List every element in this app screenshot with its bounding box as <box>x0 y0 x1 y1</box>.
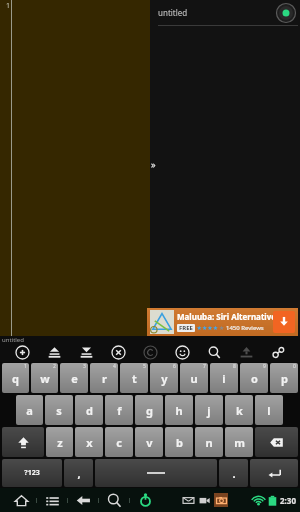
staticText: u <box>190 371 198 386</box>
staticText: k <box>236 403 243 418</box>
staticText: 1 <box>6 1 11 11</box>
staticText: m <box>234 435 245 450</box>
button[interactable]: Record <box>276 3 296 23</box>
button[interactable]: Export <box>76 343 96 362</box>
button[interactable]: Backspace <box>255 427 298 457</box>
staticText: r <box>102 371 107 386</box>
staticText: 7 <box>203 363 206 370</box>
button[interactable]: s <box>45 395 73 425</box>
staticText: 3 <box>83 363 86 370</box>
staticText: untitled <box>158 7 276 18</box>
button[interactable]: Record <box>132 488 158 512</box>
staticText: 1450 Reviews <box>226 324 264 332</box>
staticText: . <box>232 466 236 481</box>
button[interactable]: , <box>64 459 93 487</box>
staticText: Maluuba: Siri Alternative <box>177 311 277 322</box>
button[interactable]: e <box>60 363 88 393</box>
button[interactable]: o <box>240 363 268 393</box>
staticText: b <box>176 435 183 450</box>
button[interactable]: Enter <box>250 459 298 487</box>
staticText: 6 <box>173 363 176 370</box>
staticText: h <box>175 403 183 418</box>
other: Video <box>198 494 211 507</box>
button[interactable]: y <box>150 363 178 393</box>
staticText: e <box>71 371 78 386</box>
button[interactable]: f <box>105 395 133 425</box>
staticText: i <box>222 371 226 386</box>
staticText: ★ <box>219 324 226 332</box>
button[interactable]: Undo <box>140 343 160 362</box>
button[interactable]: w <box>31 363 58 393</box>
button[interactable]: Close <box>108 343 128 362</box>
staticText: v <box>146 435 153 450</box>
staticText: 4 <box>113 363 116 370</box>
button[interactable]: c <box>105 427 133 457</box>
staticText: ?123 <box>24 468 40 478</box>
staticText: , <box>77 466 81 481</box>
staticText: a <box>26 403 33 418</box>
button[interactable]: b <box>165 427 193 457</box>
button[interactable]: v <box>135 427 163 457</box>
staticText: g <box>146 403 153 418</box>
button[interactable]: m <box>225 427 253 457</box>
button[interactable]: Recents <box>39 488 65 512</box>
button[interactable]: Link <box>268 343 288 362</box>
button[interactable]: i <box>210 363 238 393</box>
staticText: 0 <box>293 363 296 370</box>
button[interactable] <box>95 459 217 487</box>
button[interactable]: ?123 <box>2 459 62 487</box>
button[interactable]: 1 <box>0 0 150 336</box>
staticText: FREE <box>179 324 193 332</box>
button[interactable]: p <box>270 363 298 393</box>
staticText: d <box>86 403 93 418</box>
button[interactable]: k <box>225 395 253 425</box>
staticText: q <box>12 371 19 386</box>
staticText: 2:30 <box>280 495 296 506</box>
other: Camera <box>214 493 228 507</box>
button[interactable]: Search <box>101 488 127 512</box>
button[interactable]: Search <box>204 343 224 362</box>
staticText: z <box>57 435 63 450</box>
staticText: ★★★★ <box>195 324 219 332</box>
staticText: 5 <box>143 363 146 370</box>
button[interactable]: Back <box>70 488 96 512</box>
staticText: 9 <box>263 363 266 370</box>
button[interactable]: z <box>46 427 73 457</box>
staticText: n <box>205 435 213 450</box>
button[interactable]: d <box>75 395 103 425</box>
staticText: l <box>267 403 271 418</box>
button[interactable]: Import <box>44 343 64 362</box>
staticText: 2 <box>53 363 56 370</box>
staticText: t <box>132 371 137 386</box>
staticText: p <box>281 371 288 386</box>
button[interactable]: t <box>120 363 148 393</box>
staticText: » <box>151 158 156 170</box>
button[interactable]: l <box>255 395 283 425</box>
button[interactable]: Add <box>12 343 32 362</box>
button[interactable]: g <box>135 395 163 425</box>
button[interactable]: u <box>180 363 208 393</box>
button[interactable]: Shift <box>2 427 44 457</box>
staticText: j <box>207 403 211 418</box>
staticText: c <box>116 435 122 450</box>
button[interactable]: q <box>2 363 29 393</box>
button[interactable]: r <box>90 363 118 393</box>
staticText: f <box>117 403 122 418</box>
button[interactable]: Upload <box>236 343 256 362</box>
staticText: 8 <box>233 363 236 370</box>
button[interactable]: x <box>75 427 103 457</box>
button[interactable]: . <box>219 459 248 487</box>
button[interactable]: Download <box>273 311 295 333</box>
staticText: w <box>40 371 50 386</box>
button[interactable]: Maluuba: Siri Alternative <box>147 308 298 336</box>
button[interactable]: Home <box>8 488 34 512</box>
staticText: untitled <box>2 336 24 344</box>
button[interactable]: n <box>195 427 223 457</box>
button[interactable]: j <box>195 395 223 425</box>
other: Mail <box>182 494 195 507</box>
staticText: x <box>86 435 93 450</box>
button[interactable]: Emoji <box>172 343 192 362</box>
button[interactable]: h <box>165 395 193 425</box>
staticText: s <box>56 403 62 418</box>
button[interactable]: a <box>16 395 43 425</box>
